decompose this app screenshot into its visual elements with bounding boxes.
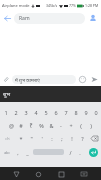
button[interactable]: 9 bbox=[81, 106, 91, 119]
staticText: 1:28 PM bbox=[85, 3, 99, 8]
button[interactable]: 7 bbox=[61, 106, 71, 119]
button[interactable]: ? bbox=[77, 132, 87, 145]
button[interactable]: " bbox=[26, 132, 37, 145]
button[interactable]: 6 bbox=[51, 106, 61, 119]
staticText: 4 bbox=[34, 109, 38, 116]
button[interactable]: Back bbox=[0, 11, 14, 25]
button[interactable]: + bbox=[66, 119, 76, 132]
staticText: में शुभ कामनाएं bbox=[15, 77, 40, 83]
staticText: ' bbox=[41, 135, 43, 142]
button[interactable]: Send bbox=[88, 73, 101, 86]
staticText: 3 bbox=[24, 109, 28, 116]
button[interactable]: Space bbox=[33, 149, 64, 155]
staticText: # bbox=[19, 122, 23, 129]
staticText: % bbox=[39, 122, 44, 129]
button[interactable]: Hide keyboard bbox=[78, 168, 90, 180]
button[interactable]: Back bbox=[10, 168, 22, 180]
button[interactable]: Home bbox=[32, 168, 44, 180]
staticText: 7 bbox=[64, 109, 68, 116]
staticText: , bbox=[17, 149, 19, 156]
staticText: " bbox=[30, 135, 33, 142]
button[interactable]: Contact bbox=[85, 10, 101, 26]
button[interactable]: % bbox=[36, 119, 46, 132]
staticText: 2 bbox=[14, 109, 18, 116]
button[interactable]: Recents bbox=[55, 168, 67, 180]
button[interactable]: _ bbox=[22, 145, 32, 159]
staticText: _ bbox=[26, 149, 29, 156]
staticText: @ bbox=[9, 122, 14, 129]
button[interactable]: ( bbox=[76, 119, 86, 132]
staticText: 77% bbox=[69, 3, 76, 8]
staticText: * bbox=[19, 135, 23, 142]
button[interactable]: Ram bbox=[14, 13, 85, 24]
button[interactable]: में शुभ कामनाएं bbox=[12, 75, 76, 84]
staticText: ? bbox=[81, 135, 84, 142]
staticText: ₹ bbox=[29, 122, 33, 129]
button[interactable]: Backspace bbox=[87, 132, 101, 145]
button[interactable]: 4 bbox=[31, 106, 41, 119]
staticText: =\< bbox=[5, 137, 10, 141]
button[interactable]: 0 bbox=[91, 106, 101, 119]
button[interactable]: =\< bbox=[0, 132, 15, 145]
button[interactable]: * bbox=[15, 132, 26, 145]
staticText: शुभ bbox=[3, 91, 10, 98]
button[interactable]: / bbox=[65, 145, 75, 159]
button[interactable]: & bbox=[46, 119, 56, 132]
button[interactable]: ! bbox=[67, 132, 77, 145]
staticText: Airplane mode bbox=[2, 3, 30, 8]
button[interactable]: : bbox=[47, 132, 57, 145]
staticText: 6 bbox=[54, 109, 58, 116]
staticText: & bbox=[49, 122, 54, 129]
button[interactable]: 5 bbox=[41, 106, 51, 119]
button[interactable]: 8 bbox=[71, 106, 81, 119]
button[interactable]: 1 bbox=[0, 106, 11, 119]
button[interactable]: ₹ bbox=[26, 119, 36, 132]
staticText: 345b/s bbox=[46, 3, 58, 8]
staticText: . bbox=[79, 149, 81, 156]
staticText: + bbox=[69, 122, 73, 129]
button[interactable]: # bbox=[16, 119, 26, 132]
button[interactable]: Attach bbox=[0, 73, 12, 85]
button[interactable]: @ bbox=[6, 119, 16, 132]
button[interactable]: 3 bbox=[21, 106, 31, 119]
staticText: ) bbox=[90, 122, 92, 129]
staticText: abc bbox=[4, 150, 10, 155]
staticText: ( bbox=[80, 122, 82, 129]
staticText: 8 bbox=[74, 109, 78, 116]
staticText: 1 bbox=[4, 109, 8, 116]
button[interactable]: ' bbox=[37, 132, 47, 145]
button[interactable]: Enter bbox=[85, 145, 101, 159]
button[interactable]: ; bbox=[57, 132, 67, 145]
staticText: : bbox=[51, 135, 53, 142]
button[interactable]: - bbox=[56, 119, 66, 132]
button[interactable]: ) bbox=[86, 119, 96, 132]
staticText: / bbox=[69, 149, 72, 156]
staticText: 0 bbox=[94, 109, 98, 116]
button[interactable]: , bbox=[13, 145, 22, 159]
button[interactable]: 2 bbox=[11, 106, 21, 119]
staticText: 5 bbox=[44, 109, 48, 116]
button[interactable]: abc bbox=[0, 145, 13, 159]
staticText: Ram bbox=[19, 15, 30, 22]
staticText: 9 bbox=[84, 109, 88, 116]
button[interactable]: Emoji bbox=[76, 73, 88, 85]
staticText: ; bbox=[61, 135, 63, 142]
staticText: ! bbox=[71, 135, 73, 142]
staticText: - bbox=[60, 122, 62, 129]
